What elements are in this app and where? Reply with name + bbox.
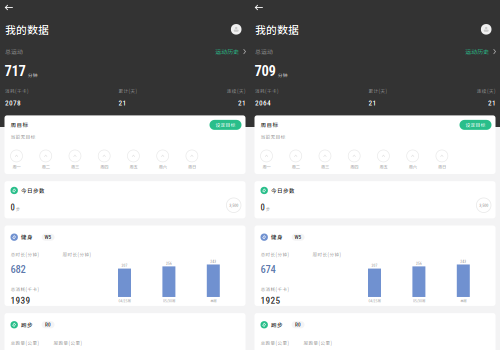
staticText: 21 [118, 99, 126, 107]
staticText: 05/30周 [413, 298, 425, 303]
staticText: 周一 [12, 163, 20, 170]
button[interactable]: Back [0, 0, 22, 15]
staticText: 我的数据 [255, 22, 299, 37]
staticText: 2078 [5, 99, 21, 107]
staticText: 健身 [271, 233, 283, 241]
staticText: 运动历史 [465, 47, 489, 56]
staticText: 总时长(分钟) [10, 251, 39, 258]
staticText: 709 [255, 62, 276, 79]
button[interactable]: Back [250, 0, 272, 15]
staticText: 207 [121, 263, 127, 268]
staticText: 设定目标 [215, 121, 235, 128]
staticText: 周二 [42, 163, 50, 170]
staticText: 2064 [255, 99, 271, 107]
staticText: 周目标 [10, 121, 28, 129]
staticText: 1939 [10, 295, 30, 306]
staticText: 消耗(千卡) [255, 88, 279, 94]
staticText: 总跑量(公里) [10, 340, 39, 346]
staticText: 717 [5, 62, 26, 79]
staticText: 682 [10, 263, 25, 275]
staticText: 运动历史 [215, 47, 239, 56]
staticText: 总运动 [255, 47, 273, 56]
staticText: 总消耗(千卡) [260, 286, 289, 293]
staticText: 累计(天) [118, 88, 137, 94]
staticText: 周五 [129, 163, 137, 170]
staticText: 0 [10, 202, 14, 213]
staticText: 3,500 [479, 203, 488, 208]
staticText: 今日步数 [21, 186, 45, 194]
staticText: 总时长(分钟) [260, 251, 289, 258]
staticText: 本周 [210, 298, 216, 303]
staticText: 消耗(千卡) [5, 88, 29, 94]
staticText: 05/30周 [163, 298, 175, 303]
button[interactable]: 运动历史 [465, 47, 496, 56]
staticText: 周一 [262, 163, 270, 170]
staticText: 256 [416, 261, 422, 266]
staticText: R0 [45, 322, 51, 328]
staticText: W5 [45, 234, 52, 240]
staticText: 步 [266, 206, 270, 212]
staticText: 跑步 [21, 321, 33, 329]
staticText: 总运动 [5, 47, 23, 56]
button[interactable]: 设定目标 [459, 120, 491, 130]
button[interactable]: Profile [231, 24, 241, 35]
staticText: 周跑量(公里) [53, 340, 82, 346]
button[interactable]: Profile [481, 24, 491, 35]
staticText: 周三 [321, 163, 329, 170]
staticText: 21 [368, 99, 376, 107]
staticText: 总跑量(公里) [260, 340, 289, 346]
staticText: 21 [488, 99, 496, 107]
staticText: 周四 [350, 163, 358, 170]
staticText: 周时长(分钟) [62, 251, 91, 258]
staticText: 207 [371, 263, 377, 268]
staticText: 健身 [21, 233, 33, 241]
staticText: 连续(天) [477, 88, 496, 94]
staticText: 分钟 [278, 72, 288, 79]
staticText: 今日步数 [271, 186, 295, 194]
staticText: 周三 [71, 163, 79, 170]
staticText: 1925 [260, 295, 280, 306]
staticText: 当前无目标 [10, 133, 35, 140]
button[interactable]: 运动历史 [215, 47, 246, 56]
staticText: 674 [260, 263, 275, 275]
staticText: R0 [295, 322, 301, 328]
staticText: 步 [16, 206, 20, 212]
button[interactable]: 设定目标 [209, 120, 241, 130]
staticText: 总消耗(千卡) [10, 286, 39, 293]
staticText: 累计(天) [368, 88, 387, 94]
staticText: 设定目标 [465, 121, 485, 128]
staticText: 周跑量(公里) [303, 340, 332, 346]
staticText: 当前无目标 [260, 133, 285, 140]
staticText: 连续(天) [227, 88, 246, 94]
staticText: 04/15周 [368, 298, 380, 303]
staticText: 分钟 [28, 72, 38, 79]
staticText: 256 [166, 261, 172, 266]
staticText: 周六 [159, 163, 167, 170]
staticText: 3,500 [229, 203, 238, 208]
staticText: 周五 [379, 163, 387, 170]
staticText: 周日 [188, 163, 196, 170]
staticText: 周时长(分钟) [312, 251, 341, 258]
staticText: 243 [460, 259, 466, 264]
staticText: 周目标 [260, 121, 278, 129]
staticText: 243 [210, 259, 216, 264]
staticText: 周二 [292, 163, 300, 170]
staticText: 04/15周 [118, 298, 130, 303]
staticText: 周四 [100, 163, 108, 170]
staticText: 我的数据 [5, 22, 49, 37]
staticText: 跑步 [271, 321, 283, 329]
staticText: 0 [260, 202, 264, 213]
staticText: W5 [295, 234, 302, 240]
staticText: 本周 [460, 298, 466, 303]
staticText: 周六 [409, 163, 417, 170]
staticText: 周日 [438, 163, 446, 170]
staticText: 21 [238, 99, 246, 107]
